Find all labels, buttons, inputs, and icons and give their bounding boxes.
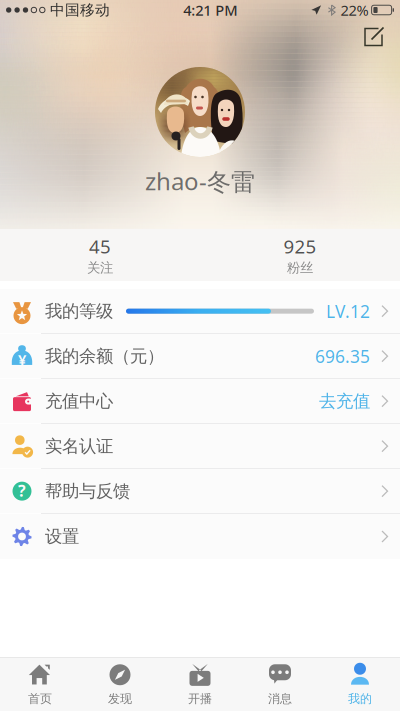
staticText: 22% <box>341 0 369 20</box>
button[interactable]: Edit profile <box>358 22 392 54</box>
staticText: 45 <box>89 234 111 259</box>
staticText: 首页 <box>28 691 52 706</box>
button[interactable]: 充值中心 <box>0 379 400 424</box>
staticText: 开播 <box>188 691 212 706</box>
staticText: 中国移动 <box>50 1 110 19</box>
staticText: 我的余额（元） <box>45 345 164 367</box>
staticText: 关注 <box>87 260 113 276</box>
staticText: 我的等级 <box>45 300 113 322</box>
staticText: 消息 <box>268 691 292 706</box>
button[interactable]: ? <box>0 469 400 514</box>
button[interactable]: 45 <box>0 229 200 281</box>
button[interactable]: Profile photo <box>155 67 245 157</box>
staticText: 去充值 <box>319 390 370 412</box>
staticText: 发现 <box>108 691 132 706</box>
staticText: ? <box>18 480 26 501</box>
staticText: 696.35 <box>315 345 370 368</box>
button[interactable]: 我的 <box>320 658 400 711</box>
staticText: 设置 <box>45 526 79 547</box>
button[interactable]: 开播 <box>160 658 240 711</box>
staticText: 粉丝 <box>287 260 313 276</box>
button[interactable]: 我的等级 <box>0 289 400 334</box>
staticText: 4:21 PM <box>183 0 237 20</box>
button[interactable]: 发现 <box>80 658 160 711</box>
button[interactable]: 消息 <box>240 658 320 711</box>
staticText: LV.12 <box>326 300 370 323</box>
staticText: 925 <box>283 234 316 259</box>
staticText: zhao-冬雷 <box>145 165 255 197</box>
staticText: ¥ <box>18 350 26 369</box>
button[interactable]: 设置 <box>0 514 400 559</box>
button[interactable]: 实名认证 <box>0 424 400 469</box>
button[interactable]: 925 <box>200 229 400 281</box>
staticText: 实名认证 <box>45 435 113 457</box>
button[interactable]: 首页 <box>0 658 80 711</box>
button[interactable]: ¥ <box>0 334 400 379</box>
staticText: 我的 <box>348 691 372 706</box>
staticText: 充值中心 <box>45 390 113 412</box>
staticText: 帮助与反馈 <box>45 480 130 502</box>
